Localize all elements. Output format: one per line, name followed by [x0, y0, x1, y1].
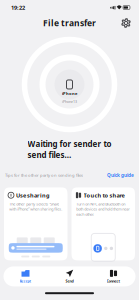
staticText: Send [65, 278, 73, 283]
staticText: File transfer [43, 17, 96, 29]
button[interactable]: Accept [3, 266, 47, 286]
button[interactable]: Quick guide [107, 172, 134, 178]
staticText: iPhone13 [62, 99, 77, 104]
button[interactable]: Send [47, 266, 91, 286]
staticText: 19:22 [11, 4, 25, 11]
staticText: The other party selects “Share with iPho… [9, 201, 62, 212]
button[interactable]: Connect [91, 266, 135, 286]
staticText: Connect [106, 278, 120, 283]
staticText: Waiting for sender to send files… [27, 138, 111, 160]
staticText: Touch to share [83, 191, 124, 199]
staticText: Use sharing [16, 191, 50, 199]
staticText: Accept [19, 278, 31, 283]
button[interactable]: Settings [118, 15, 134, 31]
staticText: iPhone [62, 90, 77, 96]
staticText: Turn on NFC and Bluetooth on both device… [76, 201, 130, 217]
staticText: Quick guide [107, 172, 134, 178]
staticText: Tips for the other party on sending file… [5, 172, 83, 178]
